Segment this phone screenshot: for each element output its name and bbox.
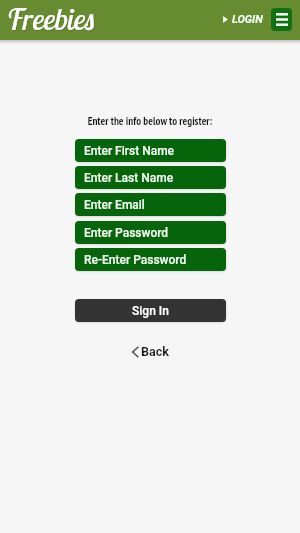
button[interactable]: Sign In — [75, 299, 226, 322]
staticText: Enter Email — [84, 198, 145, 212]
button[interactable]: Re-Enter Password — [75, 248, 226, 271]
button[interactable]: Back — [132, 344, 169, 359]
staticText: Enter Password — [84, 226, 169, 240]
button[interactable]: LOGIN — [223, 13, 263, 26]
staticText: Sign In — [132, 304, 169, 318]
staticText: Re-Enter Password — [84, 253, 187, 267]
staticText: Enter Last Name — [84, 171, 174, 185]
staticText: LOGIN — [232, 13, 263, 26]
button[interactable]: Menu — [271, 8, 292, 31]
staticText: Enter the info below to register: — [0, 114, 300, 128]
button[interactable]: Enter First Name — [75, 139, 226, 162]
staticText: Freebies — [7, 0, 96, 38]
button[interactable]: Enter Email — [75, 193, 226, 216]
staticText: Enter First Name — [84, 144, 175, 158]
staticText: Freebies — [8, 1, 97, 39]
button[interactable]: Enter Last Name — [75, 166, 226, 189]
button[interactable]: Enter Password — [75, 221, 226, 244]
staticText: Back — [141, 344, 169, 359]
